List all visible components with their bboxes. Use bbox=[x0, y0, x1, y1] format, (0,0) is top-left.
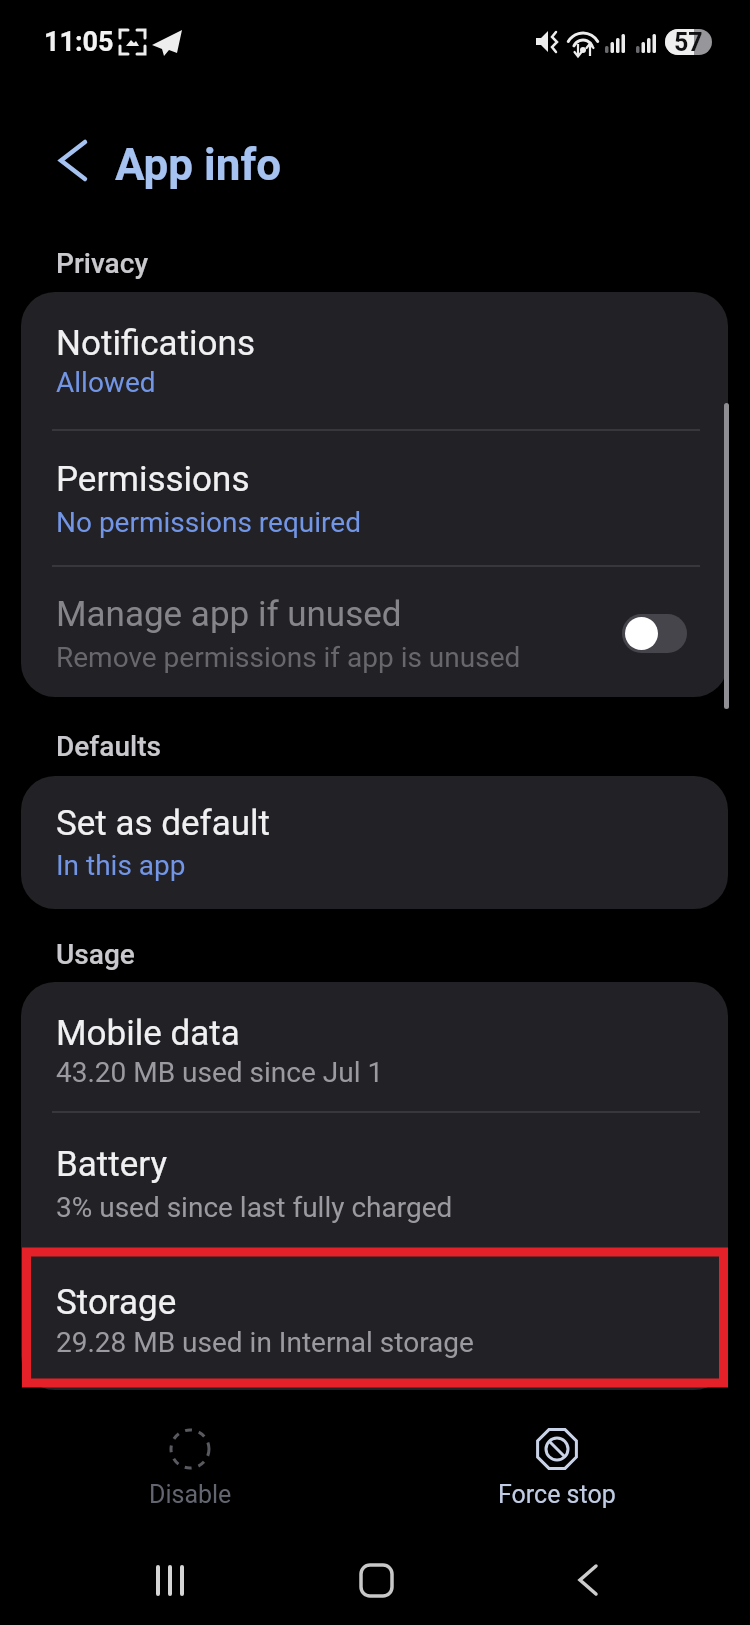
staticText: Set as default bbox=[56, 803, 271, 844]
staticText: 3% used since last fully charged bbox=[56, 1191, 453, 1224]
button[interactable]: Manage app if unused bbox=[21, 566, 728, 697]
button[interactable]: Battery bbox=[21, 1112, 728, 1247]
staticText: Force stop bbox=[498, 1480, 616, 1509]
button[interactable] bbox=[140, 1560, 204, 1604]
staticText: 43.20 MB used since Jul 1 bbox=[56, 1056, 384, 1089]
button[interactable]: Mobile data bbox=[21, 982, 728, 1111]
button[interactable] bbox=[622, 614, 687, 653]
button[interactable] bbox=[40, 125, 100, 195]
staticText: Remove permissions if app is unused bbox=[56, 641, 521, 674]
staticText: Usage bbox=[56, 938, 135, 971]
staticText: Defaults bbox=[56, 730, 161, 763]
staticText: App info bbox=[115, 139, 282, 191]
staticText: Mobile data bbox=[56, 1013, 240, 1054]
staticText: 11:05 bbox=[44, 26, 114, 58]
staticText: Notifications bbox=[56, 323, 255, 364]
staticText: In this app bbox=[56, 849, 186, 882]
staticText: Allowed bbox=[56, 366, 156, 399]
button[interactable]: Permissions bbox=[21, 430, 728, 565]
staticText: Privacy bbox=[56, 247, 149, 280]
button[interactable]: Storage bbox=[21, 1248, 728, 1390]
staticText: Storage bbox=[56, 1282, 177, 1323]
button[interactable] bbox=[344, 1560, 408, 1604]
staticText: No permissions required bbox=[56, 506, 361, 539]
staticText: Battery bbox=[56, 1144, 168, 1185]
staticText: Manage app if unused bbox=[56, 594, 402, 635]
button[interactable]: Notifications bbox=[21, 292, 728, 429]
button[interactable] bbox=[477, 1418, 637, 1518]
button[interactable]: Set as default bbox=[21, 776, 728, 909]
staticText: 29.28 MB used in Internal storage bbox=[56, 1326, 474, 1359]
button[interactable] bbox=[556, 1560, 620, 1604]
staticText: 57 bbox=[674, 28, 703, 57]
button[interactable] bbox=[110, 1418, 270, 1518]
staticText: Disable bbox=[149, 1480, 232, 1509]
staticText: Permissions bbox=[56, 459, 250, 500]
